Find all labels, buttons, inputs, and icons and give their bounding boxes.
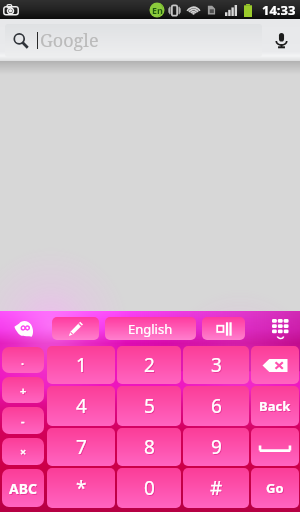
staticText: Go xyxy=(267,480,285,498)
button[interactable]: Go xyxy=(251,468,299,508)
staticText: 3 xyxy=(212,353,223,379)
staticText: Google xyxy=(40,28,99,53)
button[interactable]: ABC xyxy=(2,469,44,507)
button[interactable]: 9 xyxy=(183,428,249,466)
staticText: * xyxy=(76,475,87,501)
staticText: 7 xyxy=(76,434,87,460)
button[interactable]: Backspace xyxy=(251,346,299,384)
staticText: 3 xyxy=(211,352,222,378)
staticText: 4 xyxy=(77,394,88,420)
staticText: 6 xyxy=(211,393,222,419)
staticText: 2 xyxy=(145,353,156,379)
staticText: . xyxy=(22,354,26,369)
staticText: 2 xyxy=(144,352,155,378)
staticText: 9 xyxy=(211,434,222,460)
button[interactable]: × xyxy=(2,438,44,465)
staticText: 9 xyxy=(212,435,223,461)
staticText: - xyxy=(22,414,26,429)
staticText: × xyxy=(21,445,28,460)
button[interactable]: More keyboards xyxy=(266,314,294,342)
staticText: 0 xyxy=(145,476,156,502)
staticText: En xyxy=(152,4,163,16)
staticText: * xyxy=(77,476,88,502)
staticText: 4 xyxy=(76,393,87,419)
button[interactable]: 4 xyxy=(47,386,115,426)
button[interactable]: 0 xyxy=(117,468,181,508)
button[interactable]: 3 xyxy=(183,346,249,384)
button[interactable]: Back xyxy=(251,386,299,426)
staticText: - xyxy=(21,413,25,428)
staticText: . xyxy=(21,353,25,368)
button[interactable]: + xyxy=(2,377,44,403)
staticText: 7 xyxy=(77,435,88,461)
staticText: 5 xyxy=(144,393,155,419)
button[interactable]: 6 xyxy=(183,386,249,426)
button[interactable]: Keyboard layout xyxy=(202,317,245,340)
staticText: 14:33 xyxy=(262,1,296,19)
button[interactable]: # xyxy=(183,468,249,508)
other: Space xyxy=(258,442,292,453)
button[interactable]: . xyxy=(2,347,44,373)
button[interactable]: * xyxy=(47,468,115,508)
staticText: 0 xyxy=(144,475,155,501)
staticText: Back xyxy=(259,397,291,415)
staticText: ABC xyxy=(10,480,38,499)
button[interactable]: Space xyxy=(251,428,299,466)
staticText: Back xyxy=(260,398,292,416)
staticText: 1 xyxy=(77,353,88,379)
button[interactable]: Edit xyxy=(52,317,99,340)
staticText: # xyxy=(210,475,223,501)
staticText: Go xyxy=(266,479,284,497)
button[interactable]: - xyxy=(2,407,44,434)
button[interactable]: 2 xyxy=(117,346,181,384)
button[interactable]: 7 xyxy=(47,428,115,466)
staticText: # xyxy=(211,476,224,502)
button[interactable]: Google xyxy=(5,24,262,57)
button[interactable]: Voice search xyxy=(262,19,300,61)
staticText: 6 xyxy=(212,394,223,420)
staticText: 5 xyxy=(145,394,156,420)
staticText: + xyxy=(20,383,27,398)
button[interactable]: 1 xyxy=(47,346,115,384)
staticText: × xyxy=(20,444,27,459)
other: Backspace xyxy=(262,358,288,373)
staticText: + xyxy=(21,384,28,399)
button[interactable]: GO Keyboard menu xyxy=(13,317,35,339)
staticText: 8 xyxy=(145,435,156,461)
staticText: ABC xyxy=(9,479,37,498)
button[interactable]: 8 xyxy=(117,428,181,466)
button[interactable]: English xyxy=(105,317,196,340)
staticText: English xyxy=(128,320,173,338)
staticText: 8 xyxy=(144,434,155,460)
button[interactable]: 5 xyxy=(117,386,181,426)
staticText: 1 xyxy=(76,352,87,378)
